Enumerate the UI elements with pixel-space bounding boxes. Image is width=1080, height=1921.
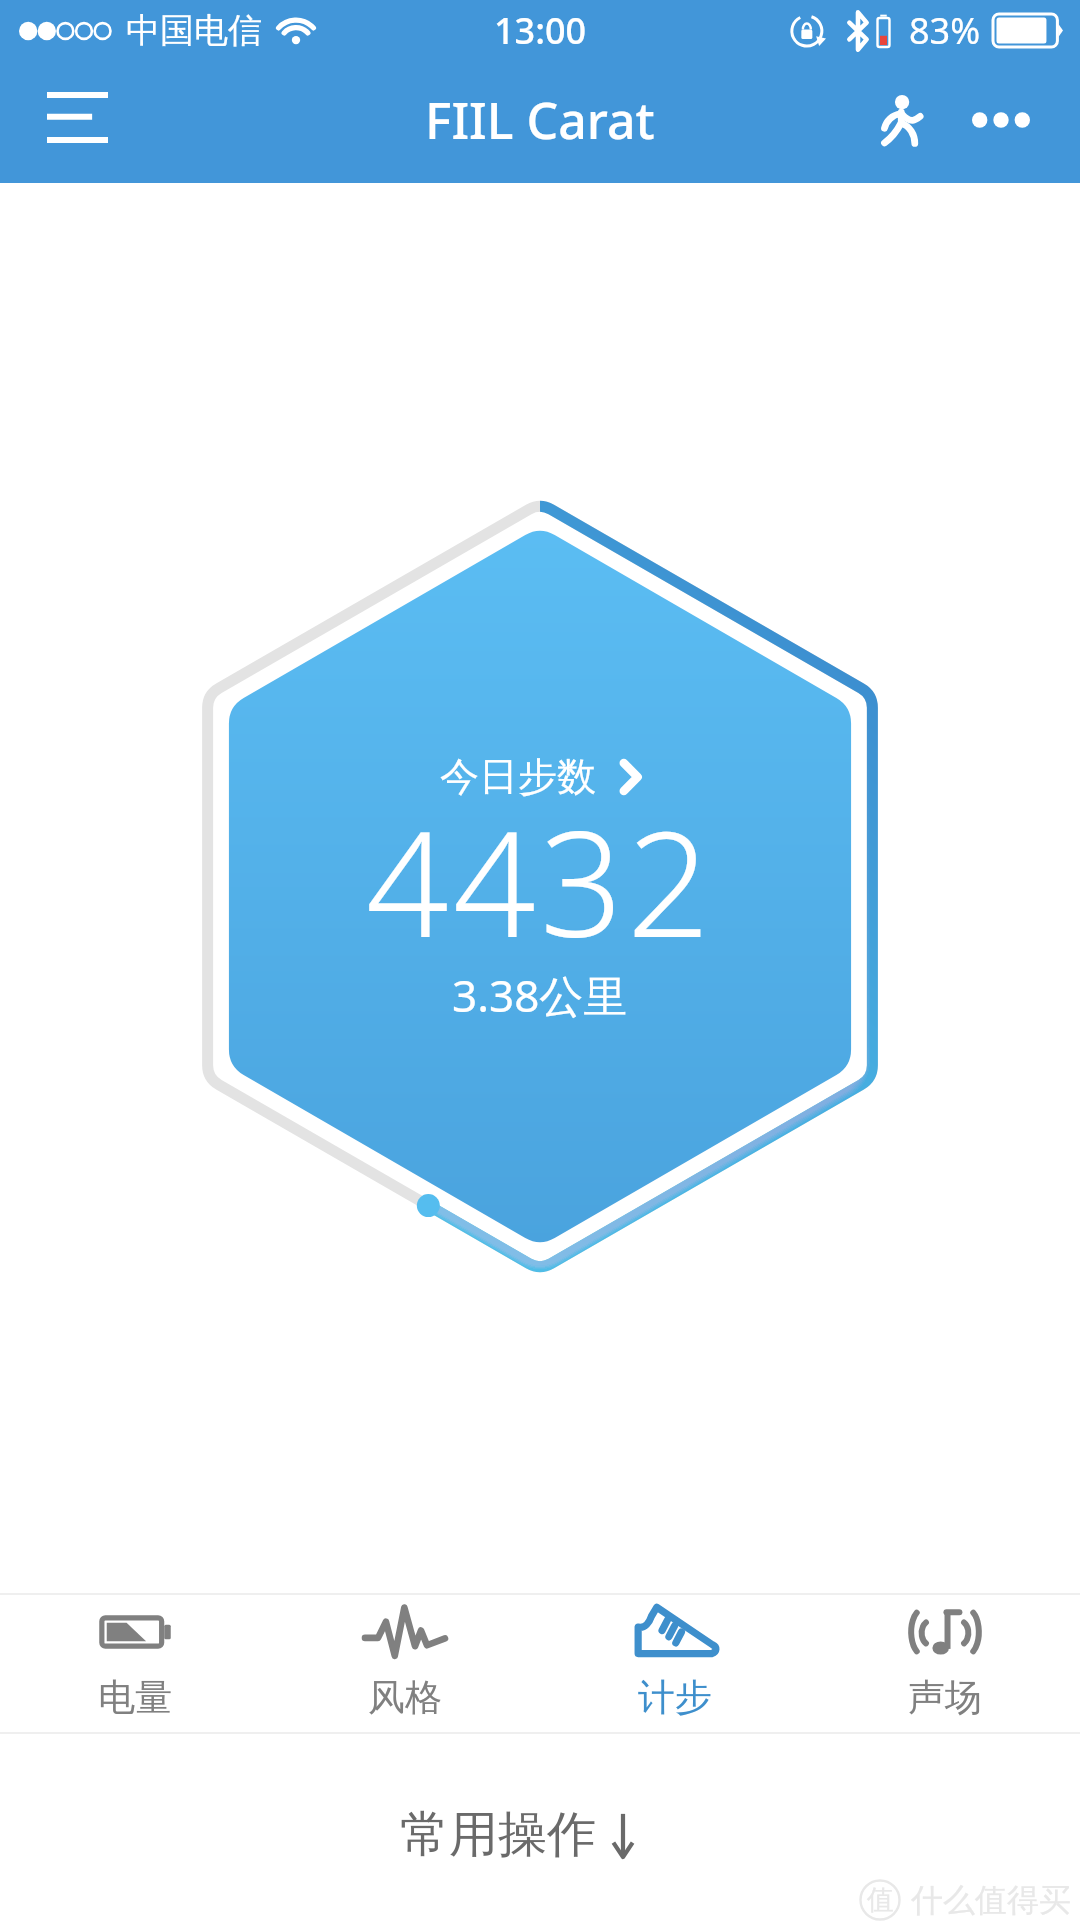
staticText: 13:00: [494, 6, 587, 55]
button[interactable]: 声场: [810, 1595, 1080, 1732]
button[interactable]: Menu: [32, 68, 123, 166]
button[interactable]: 风格: [270, 1595, 540, 1732]
button[interactable]: 电量: [0, 1595, 270, 1732]
staticText: 4432: [366, 782, 714, 979]
staticText: 3.38公里: [452, 965, 628, 1025]
button[interactable]: 计步: [540, 1595, 810, 1732]
staticText: 值: [867, 1883, 894, 1917]
staticText: FIIL Carat: [425, 86, 655, 154]
staticText: 83%: [909, 6, 981, 55]
staticText: 常用操作: [400, 1804, 596, 1866]
button[interactable]: More options: [960, 71, 1042, 169]
button[interactable]: Activity: [844, 71, 960, 169]
staticText: 计步: [638, 1674, 712, 1721]
staticText: 风格: [368, 1674, 442, 1721]
staticText: 声场: [908, 1674, 982, 1721]
staticText: 什么值得买: [911, 1880, 1071, 1920]
staticText: 今日步数: [440, 752, 596, 801]
button[interactable]: 常用操作: [400, 1804, 638, 1866]
staticText: 电量: [98, 1674, 172, 1721]
staticText: 中国电信: [126, 9, 262, 52]
